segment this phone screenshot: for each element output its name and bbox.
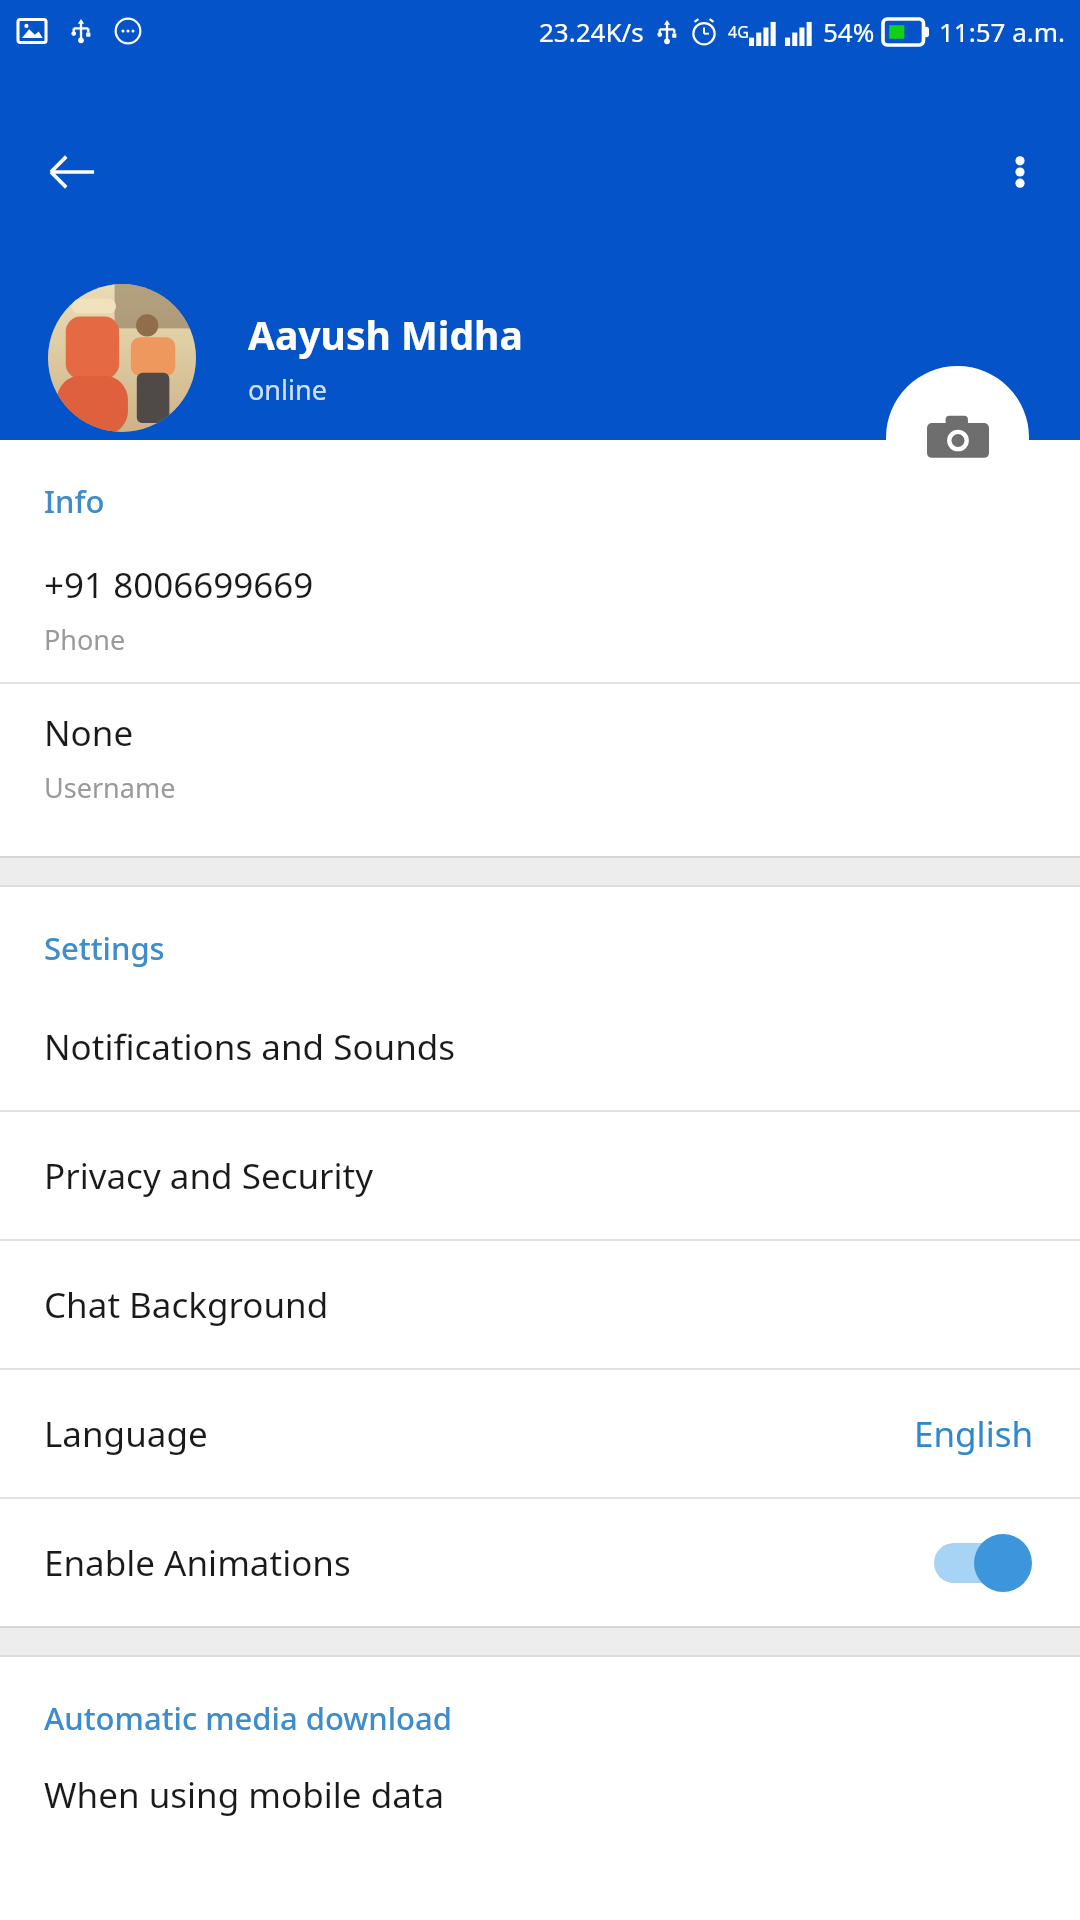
- button[interactable]: Back: [24, 124, 120, 220]
- staticText: 54%: [823, 14, 875, 49]
- button[interactable]: [48, 284, 196, 432]
- staticText: Privacy and Security: [44, 1152, 1036, 1200]
- button[interactable]: Privacy and Security: [0, 1112, 1080, 1239]
- staticText: 23.24K/s: [539, 14, 644, 49]
- staticText: Info: [44, 480, 105, 522]
- staticText: Notifications and Sounds: [44, 1023, 1036, 1071]
- staticText: Automatic media download: [44, 1697, 452, 1739]
- staticText: online: [248, 371, 327, 408]
- button[interactable]: +91 8006699669: [0, 536, 1080, 682]
- staticText: 4G: [728, 21, 749, 43]
- staticText: None: [44, 709, 134, 757]
- button[interactable]: Change photo: [886, 366, 1029, 509]
- staticText: When using mobile data: [44, 1771, 445, 1819]
- button[interactable]: Language: [0, 1370, 1080, 1497]
- staticText: Settings: [44, 927, 165, 969]
- button[interactable]: Notifications and Sounds: [0, 983, 1080, 1110]
- button[interactable]: None: [0, 684, 1080, 830]
- staticText: Aayush Midha: [248, 308, 523, 361]
- button[interactable]: Enable Animations: [0, 1499, 1080, 1626]
- staticText: 11:57 a.m.: [939, 14, 1066, 49]
- staticText: Enable Animations: [44, 1539, 928, 1587]
- staticText: Phone: [44, 621, 126, 658]
- staticText: Username: [44, 769, 176, 806]
- staticText: English: [914, 1410, 1034, 1458]
- staticText: Language: [44, 1410, 914, 1458]
- button[interactable]: Chat Background: [0, 1241, 1080, 1368]
- staticText: +91 8006699669: [44, 561, 314, 609]
- button[interactable]: When using mobile data: [0, 1753, 1080, 1873]
- button[interactable]: More options: [972, 124, 1068, 220]
- staticText: Chat Background: [44, 1281, 1036, 1329]
